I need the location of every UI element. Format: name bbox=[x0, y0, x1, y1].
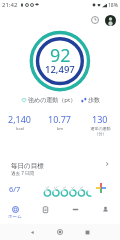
staticText: 歩数 bbox=[88, 96, 100, 104]
staticText: km bbox=[57, 126, 63, 131]
staticText: 2,140 bbox=[8, 113, 32, 125]
staticText: 12,497 bbox=[45, 63, 75, 76]
staticText: 130 bbox=[92, 113, 108, 125]
button[interactable]: Tab 1 bbox=[30, 202, 60, 222]
button[interactable]: ホーム bbox=[0, 202, 30, 222]
button[interactable]: Tab 3 bbox=[90, 202, 120, 222]
staticText: 過去 7 日間 bbox=[11, 170, 34, 176]
staticText: kcal bbox=[16, 126, 24, 131]
staticText: 18% bbox=[108, 2, 118, 9]
staticText: 21:42 bbox=[2, 1, 18, 9]
staticText: 強めの運動（pt） bbox=[28, 96, 77, 104]
button[interactable]: Profile bbox=[103, 13, 117, 27]
staticText: 10.77 bbox=[48, 113, 72, 125]
button[interactable]: History bbox=[88, 13, 102, 27]
staticText: 6/7 bbox=[9, 184, 21, 194]
button[interactable]: Add bbox=[88, 175, 113, 200]
staticText: 92 bbox=[50, 43, 71, 68]
staticText: 通常の運動 （分） bbox=[90, 126, 111, 136]
staticText: ホーム bbox=[8, 214, 22, 220]
button[interactable]: 毎日の目標 bbox=[4, 157, 116, 203]
button[interactable]: Tab 2 bbox=[60, 202, 90, 222]
staticText: 毎日の目標 bbox=[11, 162, 44, 170]
